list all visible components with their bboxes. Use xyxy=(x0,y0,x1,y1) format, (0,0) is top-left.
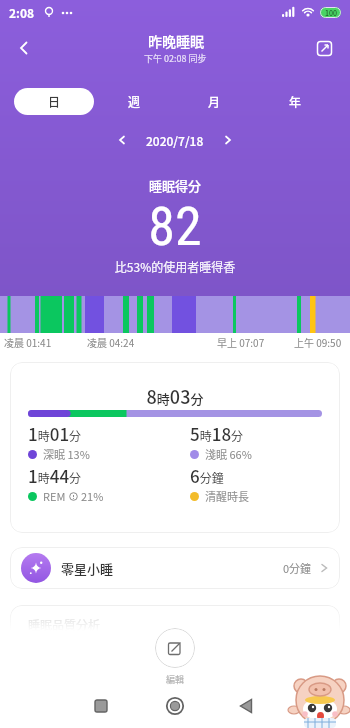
button[interactable] xyxy=(87,692,115,720)
staticText: 睡眠得分 xyxy=(0,176,350,195)
button[interactable] xyxy=(218,130,238,150)
staticText: 21% xyxy=(81,488,104,504)
button[interactable]: 零星小睡 xyxy=(10,547,340,589)
staticText: 零星小睡 xyxy=(61,559,114,578)
staticText: 編輯 xyxy=(166,673,185,686)
staticText: 8時03分 xyxy=(10,383,340,409)
staticText: 清醒時長 xyxy=(205,488,249,504)
staticText: 100 xyxy=(325,8,337,18)
button[interactable] xyxy=(10,34,38,62)
staticText: 凌晨 01:41 xyxy=(4,335,52,349)
staticText: 月 xyxy=(208,93,221,110)
button[interactable]: 週 xyxy=(94,88,174,115)
staticText: 6分鐘 xyxy=(190,463,224,488)
staticText: 1時44分 xyxy=(28,463,82,488)
staticText: 82 xyxy=(0,195,350,258)
button[interactable] xyxy=(155,628,195,668)
staticText: 1時01分 xyxy=(28,421,82,446)
button[interactable]: 日 xyxy=(14,88,94,115)
button[interactable]: 年 xyxy=(255,88,336,115)
staticText: 早上 07:07 xyxy=(217,335,265,349)
staticText: 昨晚睡眠 xyxy=(148,31,204,51)
staticText: 日 xyxy=(48,93,61,110)
button[interactable] xyxy=(112,130,132,150)
button[interactable]: 月 xyxy=(174,88,255,115)
staticText: 深眠 13% xyxy=(43,446,90,462)
staticText: 下午 02:08 同步 xyxy=(144,52,207,65)
staticText: 淺眠 66% xyxy=(205,446,252,462)
staticText: 2:08 xyxy=(9,4,35,21)
staticText: REM xyxy=(43,488,66,504)
staticText: 上午 09:50 xyxy=(294,335,342,349)
button[interactable] xyxy=(310,34,338,62)
button[interactable] xyxy=(161,692,189,720)
staticText: 週 xyxy=(128,93,141,110)
button[interactable] xyxy=(232,692,260,720)
staticText: 年 xyxy=(289,93,302,110)
staticText: 凌晨 04:24 xyxy=(87,335,135,349)
staticText: 比53%的使用者睡得香 xyxy=(0,258,350,275)
staticText: 2020/7/18 xyxy=(146,132,204,149)
staticText: 5時18分 xyxy=(190,421,244,446)
staticText: 睡眠品質分析 xyxy=(28,616,101,633)
staticText: 0分鐘 xyxy=(283,560,312,576)
